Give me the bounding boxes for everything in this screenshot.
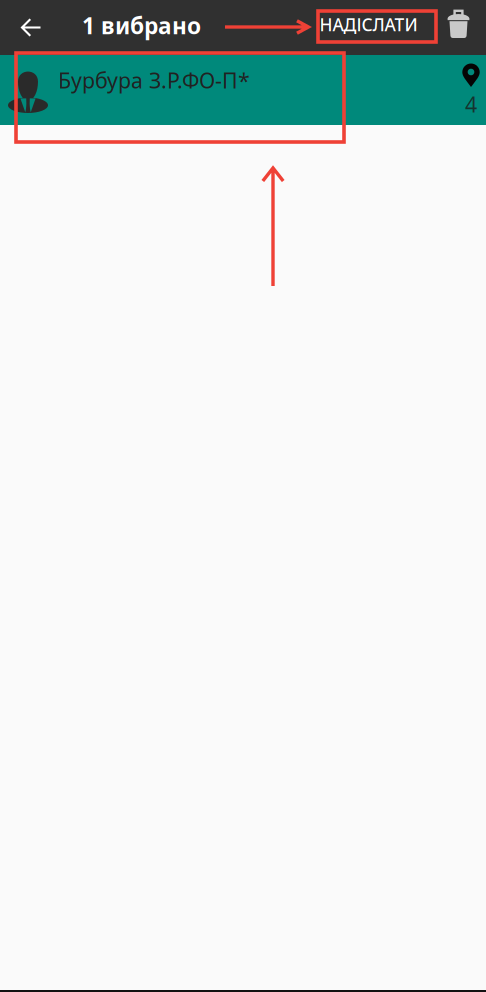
button[interactable]: Delete <box>438 0 478 55</box>
staticText: НАДІСЛАТИ <box>319 13 417 36</box>
button[interactable]: 1 вибрано <box>82 0 232 53</box>
button[interactable]: Back <box>3 0 59 55</box>
staticText: 4 <box>465 90 477 118</box>
staticText: Бурбура З.Р.ФО-П* <box>58 66 250 94</box>
staticText: 1 вибрано <box>82 10 201 40</box>
button[interactable]: НАДІСЛАТИ <box>308 0 429 52</box>
button[interactable]: Бурбура З.Р.ФО-П* <box>0 55 486 125</box>
